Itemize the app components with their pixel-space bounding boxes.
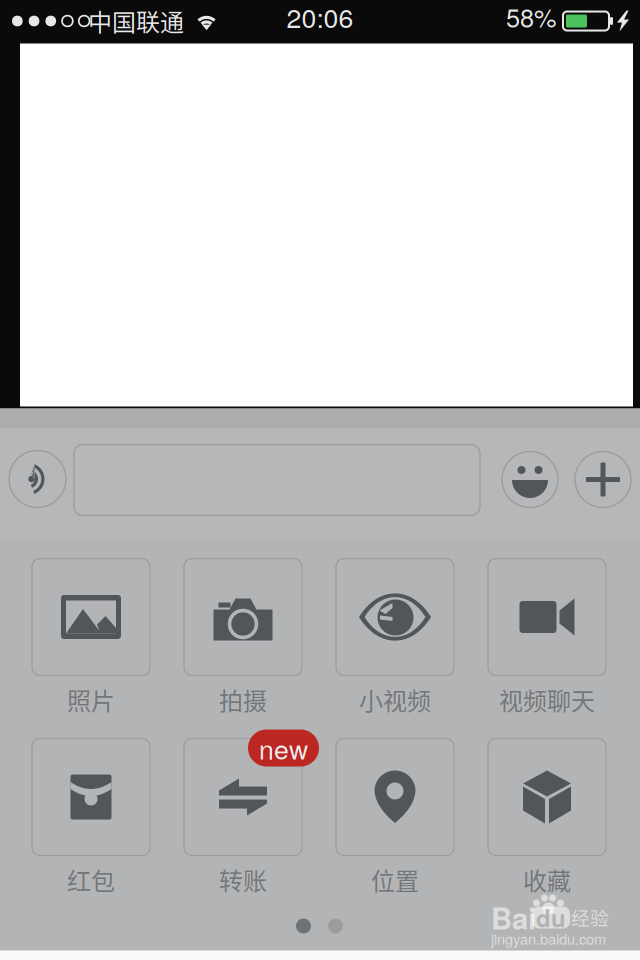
staticText: du	[536, 900, 566, 935]
staticText: jingyan.baidu.com	[491, 928, 606, 949]
staticText: 位置	[371, 862, 419, 897]
button[interactable]: 红包	[32, 738, 150, 891]
button[interactable]: 收藏	[488, 738, 606, 891]
button[interactable]: Message input	[74, 444, 480, 515]
staticText: 小视频	[359, 682, 431, 717]
staticText: Bai	[491, 896, 536, 938]
staticText: 收藏	[523, 862, 571, 897]
staticText: 转账	[219, 862, 267, 897]
staticText: 20:06	[286, 0, 353, 36]
staticText: 58%	[506, 0, 557, 35]
staticText: 经验	[571, 903, 609, 930]
button[interactable]: 照片	[32, 558, 150, 711]
button[interactable]: 小视频	[336, 558, 454, 711]
staticText: new	[259, 729, 308, 767]
staticText: 拍摄	[219, 682, 267, 717]
staticText: 红包	[67, 862, 115, 897]
button[interactable]: Voice message	[9, 450, 66, 507]
button[interactable]: 拍摄	[184, 558, 302, 711]
staticText: 照片	[67, 682, 115, 717]
staticText: 中国联通	[88, 3, 184, 38]
button[interactable]: 转账	[184, 738, 302, 891]
button[interactable]: Emoji	[502, 451, 558, 507]
button[interactable]: 位置	[336, 738, 454, 891]
button[interactable]: 视频聊天	[488, 558, 606, 711]
button[interactable]: More	[575, 451, 631, 507]
staticText: 视频聊天	[499, 682, 595, 717]
